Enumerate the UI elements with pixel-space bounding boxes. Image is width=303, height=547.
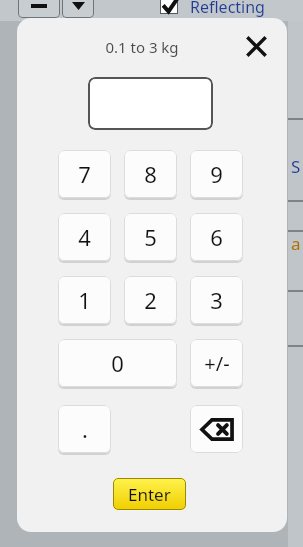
button[interactable]: +/-: [190, 339, 243, 387]
button[interactable]: Dropdown: [62, 0, 94, 18]
button[interactable]: 9: [190, 150, 243, 198]
button[interactable]: 8: [124, 150, 177, 198]
button[interactable]: 1: [58, 276, 111, 324]
staticText: .: [82, 414, 88, 444]
button[interactable]: Reflecting checkbox: [160, 0, 178, 14]
button[interactable]: Enter: [113, 478, 186, 510]
button[interactable]: [88, 77, 213, 130]
button[interactable]: Close: [238, 28, 274, 64]
staticText: 8: [144, 159, 157, 189]
staticText: 0: [111, 348, 124, 378]
staticText: +/-: [204, 350, 230, 377]
staticText: Enter: [128, 483, 171, 506]
button[interactable]: 7: [58, 150, 111, 198]
staticText: a: [291, 232, 301, 255]
staticText: 1: [78, 285, 91, 315]
staticText: 3: [210, 285, 223, 315]
button[interactable]: 6: [190, 213, 243, 261]
staticText: 2: [144, 285, 157, 315]
button[interactable]: Backspace: [190, 405, 243, 453]
button[interactable]: 5: [124, 213, 177, 261]
button[interactable]: 2: [124, 276, 177, 324]
button[interactable]: 0: [58, 339, 177, 387]
button[interactable]: .: [58, 405, 111, 453]
button[interactable]: Decrease: [18, 0, 60, 18]
staticText: 5: [144, 222, 157, 252]
button[interactable]: 3: [190, 276, 243, 324]
staticText: 7: [78, 159, 91, 189]
staticText: 9: [210, 159, 223, 189]
staticText: Reflecting: [190, 0, 265, 18]
staticText: 6: [210, 222, 223, 252]
staticText: 4: [78, 222, 91, 252]
button[interactable]: 4: [58, 213, 111, 261]
staticText: S: [291, 155, 301, 178]
staticText: 0.1 to 3 kg: [105, 37, 179, 57]
